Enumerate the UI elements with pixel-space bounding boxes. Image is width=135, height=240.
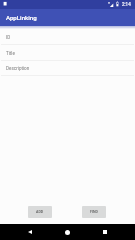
button[interactable]: Home [59, 224, 75, 240]
staticText: ADD [36, 210, 44, 214]
staticText: AppLinking [6, 14, 37, 21]
staticText: Title [6, 51, 15, 56]
button[interactable]: Recents [97, 224, 113, 240]
staticText: FIND [90, 210, 98, 214]
button[interactable]: Back [22, 224, 38, 240]
staticText: ID [6, 35, 11, 40]
staticText: Description [6, 66, 30, 71]
button[interactable]: ID [0, 30, 135, 45]
button[interactable]: FIND [82, 206, 106, 218]
button[interactable]: ADD [28, 206, 52, 218]
button[interactable]: Description [0, 61, 135, 76]
button[interactable]: Title [0, 46, 135, 61]
staticText: 2:14 [122, 2, 131, 7]
